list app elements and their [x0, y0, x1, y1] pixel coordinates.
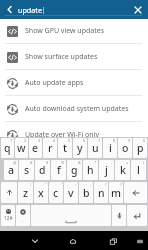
- button[interactable]: f: [51, 160, 66, 180]
- staticText: 2: [24, 138, 27, 143]
- button[interactable]: g: [67, 160, 82, 180]
- button[interactable]: Update over Wi-Fi only: [0, 122, 148, 148]
- staticText: ": [45, 182, 47, 187]
- staticText: 8: [113, 138, 116, 143]
- staticText: n: [98, 186, 105, 200]
- button[interactable]: Backspace: [124, 182, 147, 203]
- button[interactable]: Symbols: [1, 205, 15, 226]
- staticText: c: [53, 186, 59, 200]
- button[interactable]: Auto download system updates: [0, 96, 148, 122]
- button[interactable]: d: [35, 160, 50, 180]
- staticText: s: [24, 163, 30, 177]
- staticText: (: [143, 160, 145, 165]
- staticText: ,: [22, 217, 24, 222]
- staticText: z: [23, 186, 29, 200]
- button[interactable]: a: [4, 160, 18, 180]
- staticText: Auto download system updates: [25, 104, 129, 114]
- staticText: *: [94, 160, 97, 165]
- button[interactable]: Auto update apps: [0, 70, 148, 96]
- staticText: ?: [120, 182, 122, 187]
- staticText: i: [109, 141, 112, 155]
- button[interactable]: s: [19, 160, 34, 180]
- button[interactable]: r: [43, 138, 57, 158]
- button[interactable]: Show GPU view updates: [0, 18, 148, 44]
- button[interactable]: Shift: [1, 182, 17, 203]
- staticText: a: [8, 163, 15, 177]
- button[interactable]: m: [109, 182, 123, 203]
- button[interactable]: e: [29, 138, 42, 158]
- staticText: 7: [98, 138, 101, 143]
- button[interactable]: v: [64, 182, 78, 203]
- staticText: Show surface updates: [25, 52, 98, 62]
- staticText: $: [46, 160, 49, 165]
- staticText: l: [137, 163, 140, 177]
- staticText: Show GPU view updates: [25, 26, 105, 36]
- button[interactable]: z: [18, 182, 33, 203]
- button[interactable]: c: [49, 182, 63, 203]
- staticText: /: [105, 182, 107, 187]
- button[interactable]: w: [15, 138, 28, 158]
- staticText: update: [18, 5, 42, 15]
- staticText: 6: [83, 138, 86, 143]
- staticText: 3: [38, 138, 41, 143]
- staticText: f: [57, 163, 61, 177]
- button[interactable]: l: [131, 160, 146, 180]
- staticText: m: [111, 186, 121, 200]
- staticText: %: [61, 160, 65, 165]
- staticText: t: [63, 141, 68, 155]
- staticText: 1: [10, 138, 13, 143]
- staticText: p: [137, 141, 144, 155]
- staticText: +: [126, 160, 129, 165]
- staticText: u: [92, 141, 99, 155]
- button[interactable]: Settings: [16, 205, 30, 226]
- button[interactable]: Recent apps: [103, 233, 123, 249]
- staticText: ': [61, 182, 62, 187]
- staticText: y: [77, 141, 83, 155]
- staticText: o: [122, 141, 129, 155]
- button[interactable]: n: [94, 182, 108, 203]
- staticText: -: [111, 160, 113, 165]
- button[interactable]: j: [99, 160, 114, 180]
- button[interactable]: y: [73, 138, 87, 158]
- staticText: &: [78, 160, 81, 165]
- button[interactable]: Clear search: [127, 0, 148, 19]
- button[interactable]: h: [83, 160, 98, 180]
- button[interactable]: x: [34, 182, 48, 203]
- button[interactable]: Switch keyboard: [131, 233, 148, 249]
- staticText: e: [32, 141, 39, 155]
- button[interactable]: q: [1, 138, 14, 158]
- button[interactable]: b: [79, 182, 93, 203]
- button[interactable]: o: [118, 138, 132, 158]
- button[interactable]: u: [88, 138, 102, 158]
- button[interactable]: Back: [0, 0, 18, 19]
- button[interactable]: p: [133, 138, 147, 158]
- staticText: @: [13, 160, 17, 165]
- staticText: q: [4, 141, 11, 155]
- staticText: j: [105, 163, 108, 177]
- button[interactable]: i: [103, 138, 117, 158]
- button[interactable]: Voice input: [112, 205, 126, 226]
- button[interactable]: Space: [31, 205, 111, 226]
- staticText: w: [17, 141, 26, 155]
- staticText: h: [87, 163, 94, 177]
- staticText: v: [68, 186, 74, 200]
- staticText: x: [38, 186, 44, 200]
- staticText: g: [71, 163, 78, 177]
- button[interactable]: Home: [63, 233, 83, 249]
- staticText: d: [39, 163, 46, 177]
- button[interactable]: t: [58, 138, 72, 158]
- staticText: Auto update apps: [25, 78, 84, 88]
- staticText: :: [75, 182, 77, 187]
- button[interactable]: k: [115, 160, 130, 180]
- button[interactable]: Hide keyboard: [25, 233, 45, 249]
- staticText: 4: [53, 138, 56, 143]
- staticText: 0: [143, 138, 146, 143]
- staticText: b: [83, 186, 90, 200]
- button[interactable]: Enter: [127, 205, 147, 226]
- staticText: 5: [68, 138, 71, 143]
- staticText: r: [48, 141, 53, 155]
- staticText: k: [120, 163, 126, 177]
- button[interactable]: Show surface updates: [0, 44, 148, 70]
- staticText: Update over Wi-Fi only: [25, 130, 100, 140]
- staticText: 12#: [4, 215, 13, 222]
